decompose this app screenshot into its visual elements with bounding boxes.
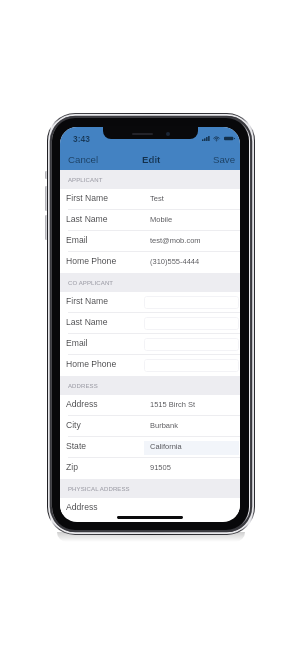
staticText: Address bbox=[66, 502, 98, 512]
button[interactable]: First Name bbox=[60, 292, 240, 313]
staticText: Email bbox=[66, 235, 88, 245]
button[interactable]: Last Name bbox=[60, 313, 240, 334]
button[interactable]: State bbox=[60, 437, 240, 458]
button[interactable]: Save bbox=[208, 151, 240, 168]
staticText: (310)555-4444 bbox=[150, 257, 200, 265]
staticText: Last Name bbox=[66, 214, 108, 224]
staticText: ADDRESS bbox=[68, 383, 98, 390]
staticText: 1515 Birch St bbox=[150, 400, 196, 408]
staticText: First Name bbox=[66, 296, 109, 306]
button[interactable]: Address bbox=[60, 395, 240, 416]
button[interactable]: First Name bbox=[60, 189, 240, 210]
staticText: Save bbox=[213, 154, 236, 165]
staticText: test@mob.com bbox=[150, 236, 201, 244]
staticText: Address bbox=[66, 399, 98, 409]
button[interactable]: Home Phone bbox=[60, 355, 240, 376]
button[interactable]: Address bbox=[60, 498, 240, 519]
staticText: Burbank bbox=[150, 421, 178, 429]
staticText: Cancel bbox=[68, 154, 99, 165]
staticText: 3:43 bbox=[73, 134, 90, 143]
button[interactable]: Email bbox=[60, 334, 240, 355]
staticText: State bbox=[66, 441, 87, 451]
staticText: Zip bbox=[66, 462, 78, 472]
staticText: Home Phone bbox=[66, 256, 117, 266]
button[interactable]: Zip bbox=[60, 458, 240, 479]
staticText: PHYSICAL ADDRESS bbox=[68, 486, 130, 493]
staticText: CO APPLICANT bbox=[68, 280, 114, 287]
staticText: Test bbox=[150, 194, 164, 202]
staticText: Last Name bbox=[66, 317, 108, 327]
staticText: APPLICANT bbox=[68, 177, 103, 184]
button[interactable]: Cancel bbox=[60, 151, 104, 168]
button[interactable]: Edit bbox=[139, 151, 164, 168]
staticText: Email bbox=[66, 338, 88, 348]
staticText: City bbox=[66, 420, 81, 430]
staticText: First Name bbox=[66, 193, 109, 203]
button[interactable]: Home Phone bbox=[60, 252, 240, 273]
staticText: Edit bbox=[142, 154, 161, 165]
button[interactable]: City bbox=[60, 416, 240, 437]
staticText: California bbox=[150, 442, 182, 450]
staticText: 91505 bbox=[150, 463, 171, 471]
staticText: Home Phone bbox=[66, 359, 117, 369]
button[interactable]: Last Name bbox=[60, 210, 240, 231]
staticText: Mobile bbox=[150, 215, 173, 223]
button[interactable]: Email bbox=[60, 231, 240, 252]
